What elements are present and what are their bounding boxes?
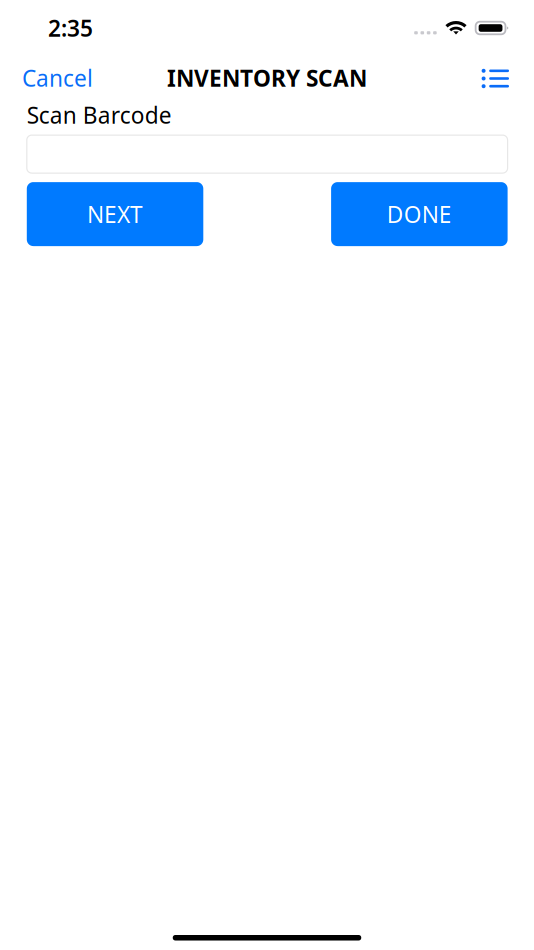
staticText: 2:35 — [48, 13, 93, 43]
staticText: Scan Barcode — [27, 100, 172, 130]
button[interactable]: Scan Barcode text field — [27, 135, 508, 173]
button[interactable]: List — [468, 56, 534, 100]
button[interactable]: Cancel — [0, 58, 105, 98]
staticText: NEXT — [87, 199, 143, 229]
staticText: DONE — [387, 199, 452, 229]
staticText: Cancel — [22, 63, 93, 93]
button[interactable]: NEXT — [27, 182, 203, 246]
staticText: INVENTORY SCAN — [167, 63, 367, 93]
button[interactable]: DONE — [331, 182, 508, 246]
